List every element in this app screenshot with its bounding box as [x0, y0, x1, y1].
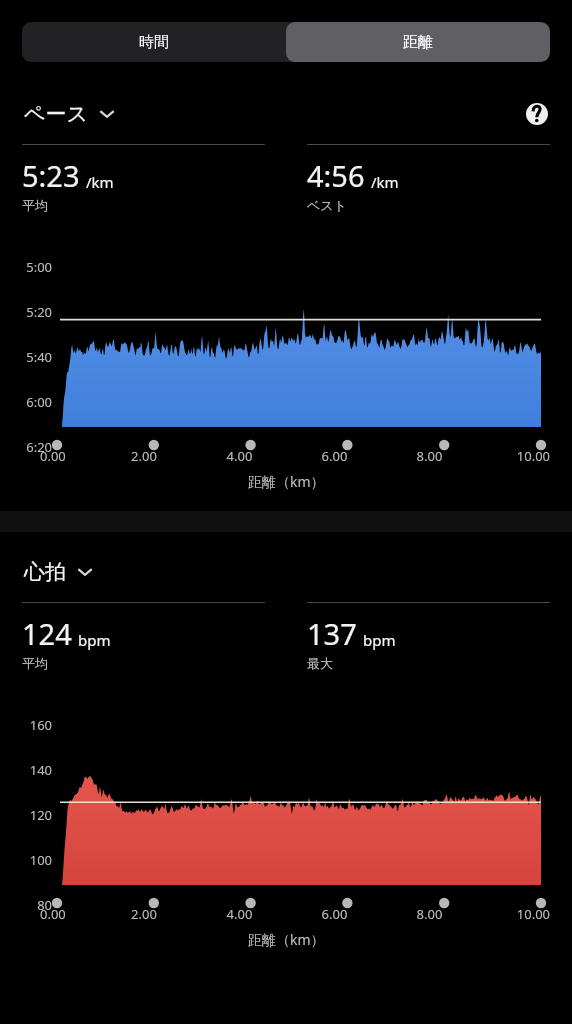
staticText: ベスト: [307, 197, 347, 213]
staticText: 140: [14, 761, 52, 779]
staticText: 2.00: [96, 905, 192, 923]
staticText: 6:00: [14, 393, 52, 411]
staticText: 2.00: [96, 447, 192, 465]
staticText: 平均: [22, 197, 48, 213]
staticText: bpm: [363, 630, 396, 650]
staticText: 4.00: [192, 447, 287, 465]
staticText: 8.00: [382, 905, 477, 923]
staticText: 4:56: [307, 156, 365, 195]
staticText: 0.00: [40, 905, 96, 923]
button[interactable]: ペース: [22, 97, 117, 131]
staticText: 4.00: [192, 905, 287, 923]
button[interactable]: 距離: [286, 22, 550, 62]
button[interactable]: 心拍: [22, 555, 95, 589]
staticText: 100: [14, 851, 52, 869]
staticText: 160: [14, 716, 52, 734]
staticText: /km: [371, 172, 399, 192]
staticText: 距離（km）: [248, 930, 325, 949]
staticText: 10.00: [477, 447, 550, 465]
staticText: 心拍: [24, 559, 66, 585]
staticText: 124: [22, 614, 72, 653]
staticText: ペース: [24, 101, 88, 127]
staticText: 6.00: [287, 905, 382, 923]
staticText: 時間: [139, 33, 169, 52]
staticText: 5:00: [14, 258, 52, 276]
staticText: 5:40: [14, 348, 52, 366]
staticText: 距離: [403, 33, 433, 52]
staticText: 最大: [307, 655, 333, 671]
staticText: 0.00: [40, 447, 96, 465]
staticText: 137: [307, 614, 357, 653]
staticText: 5:23: [22, 156, 80, 195]
staticText: 80: [14, 896, 52, 914]
staticText: bpm: [78, 630, 111, 650]
staticText: /km: [86, 172, 114, 192]
staticText: 5:20: [14, 303, 52, 321]
staticText: 120: [14, 806, 52, 824]
staticText: 10.00: [477, 905, 550, 923]
staticText: 6:20: [14, 438, 52, 456]
staticText: 距離（km）: [248, 472, 325, 491]
button[interactable]: Help: [525, 102, 549, 126]
staticText: 8.00: [382, 447, 477, 465]
staticText: 6.00: [287, 447, 382, 465]
button[interactable]: 時間: [22, 22, 286, 62]
staticText: 平均: [22, 655, 48, 671]
